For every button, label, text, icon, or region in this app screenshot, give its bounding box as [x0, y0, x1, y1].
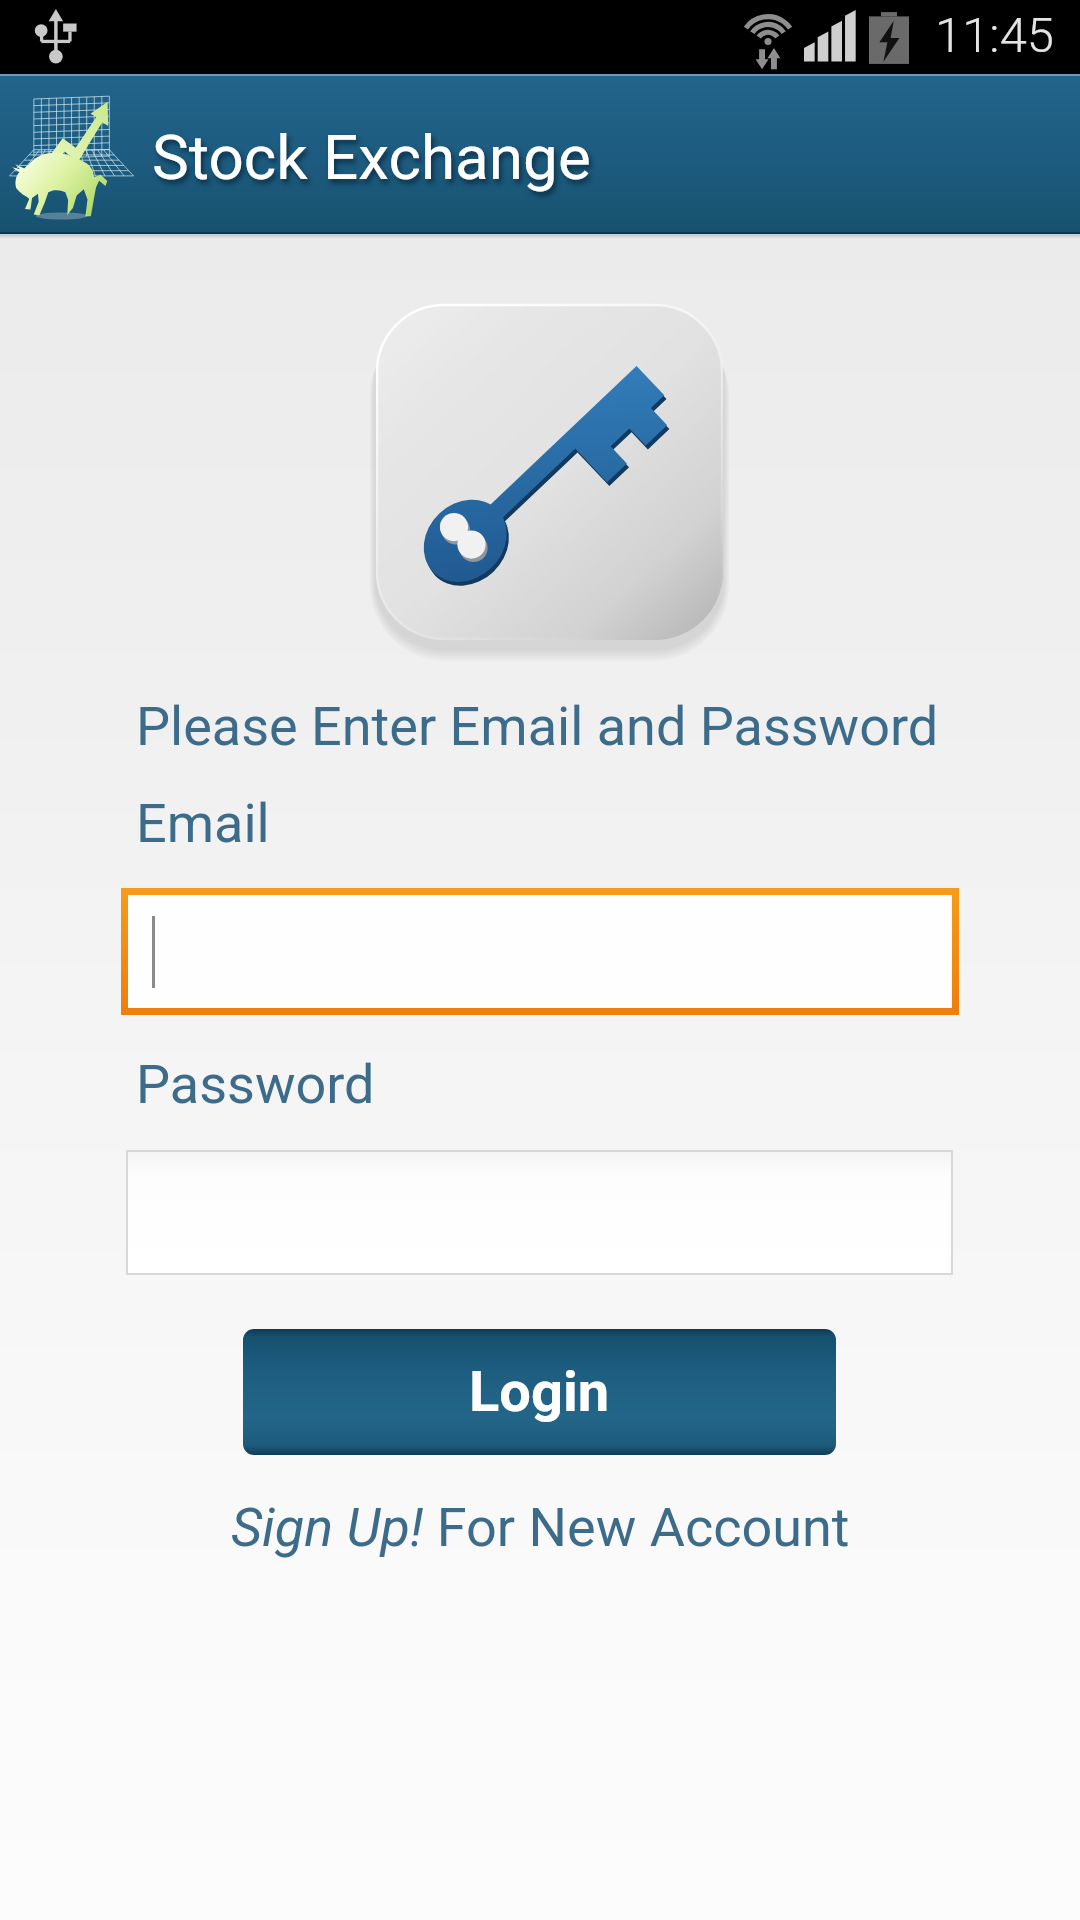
button[interactable]: [128, 895, 952, 1008]
button[interactable]: Sign Up! For New Account: [231, 1496, 850, 1559]
button[interactable]: Login: [243, 1329, 836, 1455]
staticText: Stock Exchange: [152, 121, 591, 194]
staticText: 11:45: [935, 7, 1055, 64]
staticText: Login: [469, 1359, 610, 1425]
staticText: Password: [136, 1053, 375, 1116]
other: USB connected: [33, 7, 77, 63]
staticText: Email: [136, 792, 270, 855]
staticText: Please Enter Email and Password: [136, 695, 939, 758]
